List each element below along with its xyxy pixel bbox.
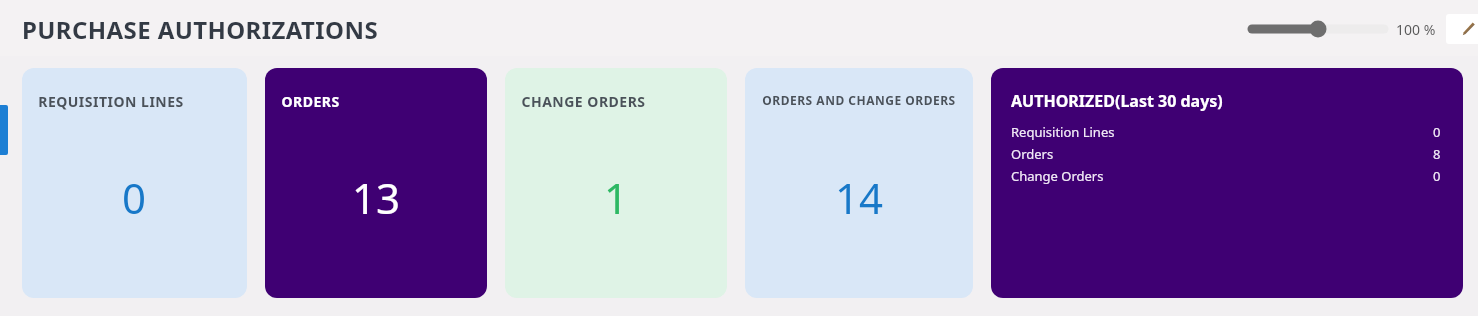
button[interactable]: Edit [1446,14,1478,44]
staticText: 13 [352,169,401,226]
button[interactable]: REQUISITION LINES [22,68,247,298]
staticText: CHANGE ORDERS [521,92,646,111]
button[interactable]: AUTHORIZED(Last 30 days) [991,68,1463,298]
staticText: 1 [604,169,629,226]
button[interactable]: Change Orders [1011,167,1441,185]
staticText: REQUISITION LINES [38,92,184,111]
button[interactable]: ORDERS AND CHANGE ORDERS [745,68,973,298]
staticText: Change Orders [1011,167,1104,185]
button[interactable]: Requisition Lines [1011,123,1441,141]
button[interactable]: Expand panel [0,105,8,155]
staticText: 14 [835,169,884,226]
staticText: 100 % [1396,20,1436,39]
staticText: 0 [1433,167,1441,185]
staticText: PURCHASE AUTHORIZATIONS [22,13,379,46]
button[interactable]: Orders [1011,145,1441,163]
staticText: 0 [1433,123,1441,141]
button[interactable]: CHANGE ORDERS [505,68,727,298]
staticText: 0 [122,169,147,226]
staticText: 8 [1433,145,1441,163]
button[interactable]: Zoom level slider [1248,18,1388,40]
staticText: Orders [1011,145,1054,163]
button[interactable]: ORDERS [265,68,487,298]
staticText: ORDERS AND CHANGE ORDERS [762,92,956,108]
staticText: AUTHORIZED(Last 30 days) [1011,90,1223,112]
staticText: ORDERS [281,92,340,111]
staticText: Requisition Lines [1011,123,1115,141]
button[interactable]: PURCHASE AUTHORIZATIONS [22,13,379,46]
